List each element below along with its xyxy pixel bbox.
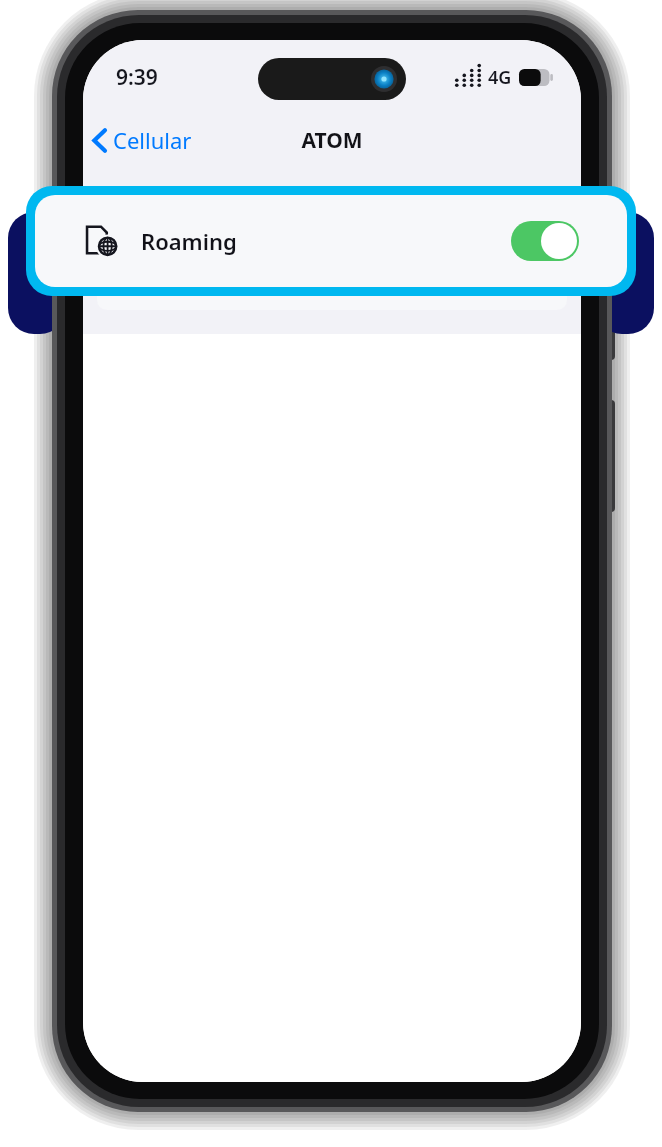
staticText: Cellular [113,125,192,155]
button[interactable]: Do Not Disturb [97,236,567,310]
button[interactable]: Roaming toggle, on [511,221,579,261]
staticText: 9:39 [116,63,158,92]
staticText: ATOM [301,126,363,155]
button[interactable]: Roaming [35,195,627,287]
staticText: Roaming [141,226,237,256]
staticText: 4G [488,65,512,90]
other: Roaming [85,224,119,258]
button[interactable]: Cellular [83,119,202,161]
